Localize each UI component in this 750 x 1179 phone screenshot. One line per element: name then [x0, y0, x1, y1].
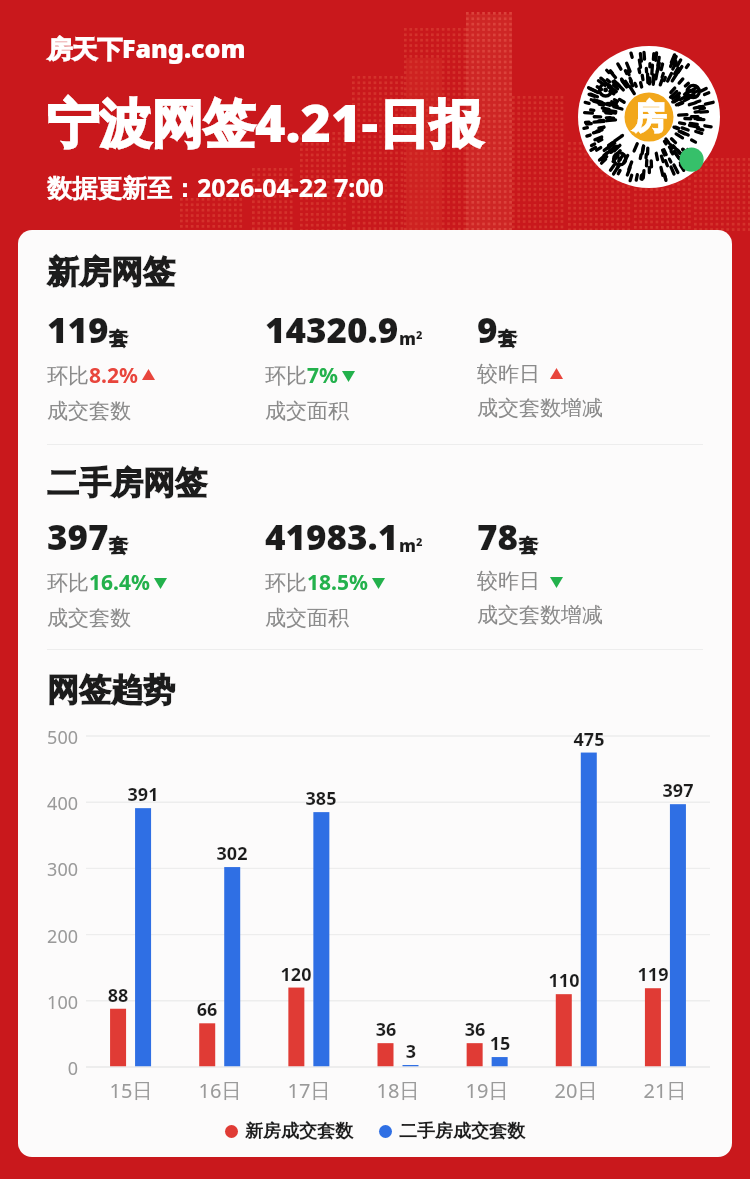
staticText: 成交套数增减	[477, 395, 603, 421]
staticText: 397	[47, 513, 109, 561]
staticText: 475	[567, 727, 611, 752]
staticText: 房天下	[47, 34, 122, 65]
staticText: 19日	[457, 1077, 517, 1104]
staticText: 100	[38, 990, 78, 1015]
staticText: 房	[632, 96, 666, 139]
staticText: 0	[38, 1056, 78, 1081]
staticText: 16日	[190, 1077, 250, 1104]
staticText: 8.2%	[89, 361, 138, 390]
staticText: 18.5%	[307, 568, 368, 597]
staticText: 二手房网签	[47, 463, 207, 503]
button[interactable]: 14320.9	[265, 306, 423, 424]
staticText: 36	[453, 1017, 497, 1042]
button[interactable]: 78	[477, 513, 603, 628]
staticText: 成交套数增减	[477, 602, 603, 628]
staticText: 套	[519, 534, 538, 558]
staticText: 较昨日	[477, 568, 540, 594]
staticText: 2	[416, 327, 423, 342]
staticText: 数据更新至：2026-04-22 7:00	[47, 170, 384, 204]
staticText: 环比	[265, 363, 307, 389]
staticText: 397	[656, 778, 700, 803]
staticText: 环比	[47, 570, 89, 596]
staticText: 环比	[47, 363, 89, 389]
staticText: 110	[542, 968, 586, 993]
staticText: 14320.9	[265, 306, 399, 354]
staticText: 套	[109, 534, 128, 558]
staticText: 成交面积	[265, 605, 349, 631]
staticText: 7%	[307, 361, 338, 390]
staticText: 36	[364, 1017, 408, 1042]
staticText: 17日	[279, 1077, 339, 1104]
staticText: 21日	[635, 1077, 695, 1104]
staticText: 300	[38, 857, 78, 882]
staticText: Fang.com	[122, 31, 246, 65]
staticText: 9	[477, 306, 498, 354]
staticText: 16.4%	[89, 568, 150, 597]
staticText: 成交套数	[47, 605, 131, 631]
staticText: 119	[631, 962, 675, 987]
staticText: 119	[47, 306, 109, 354]
staticText: 新房网签	[47, 252, 175, 292]
staticText: 二手房成交套数	[399, 1120, 525, 1143]
staticText: 套	[498, 327, 517, 351]
staticText: 385	[299, 786, 343, 811]
staticText: m	[399, 534, 416, 557]
staticText: 环比	[265, 570, 307, 596]
staticText: 20日	[546, 1077, 606, 1104]
staticText: 15日	[101, 1077, 161, 1104]
staticText: 78	[477, 513, 519, 561]
staticText: 宁波网签4.21-日报	[47, 86, 482, 157]
staticText: 较昨日	[477, 361, 540, 387]
button[interactable]: 41983.1	[265, 513, 423, 631]
staticText: 88	[96, 983, 140, 1008]
staticText: m	[399, 327, 416, 350]
staticText: 2	[416, 534, 423, 549]
staticText: 成交套数	[47, 398, 131, 424]
staticText: 120	[274, 962, 318, 987]
staticText: 3	[389, 1039, 433, 1064]
staticText: 200	[38, 924, 78, 949]
staticText: 网签趋势	[47, 670, 175, 710]
staticText: 15	[478, 1031, 522, 1056]
staticText: 18日	[368, 1077, 428, 1104]
staticText: 41983.1	[265, 513, 399, 561]
staticText: 套	[109, 327, 128, 351]
staticText: 302	[210, 841, 254, 866]
staticText: 391	[121, 782, 165, 807]
staticText: 66	[185, 997, 229, 1022]
staticText: 新房成交套数	[245, 1120, 353, 1143]
button[interactable]: 119	[47, 306, 156, 424]
staticText: 成交面积	[265, 398, 349, 424]
staticText: 500	[38, 725, 78, 750]
button[interactable]: 397	[47, 513, 168, 631]
staticText: 400	[38, 791, 78, 816]
button[interactable]: 9	[477, 306, 603, 421]
button[interactable]: 扫码关注小程序	[578, 46, 720, 188]
